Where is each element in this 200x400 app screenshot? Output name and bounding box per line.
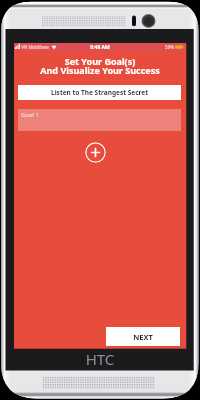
staticText: Set Your Goal(s) And Visualize Your Succ… xyxy=(14,55,186,77)
staticText: HTC xyxy=(0,349,200,369)
staticText: 9:48 AM xyxy=(14,44,186,51)
button[interactable]: NEXT xyxy=(106,327,180,346)
staticText: VN Mobifone xyxy=(21,44,49,50)
button[interactable]: Goal 1 xyxy=(18,109,181,131)
button[interactable]: Listen to The Strangest Secret xyxy=(18,85,181,100)
staticText: Listen to The Strangest Secret xyxy=(51,88,148,97)
button[interactable]: Add goal xyxy=(85,142,106,163)
staticText: Goal 1 xyxy=(21,111,39,119)
staticText: NEXT xyxy=(133,332,153,342)
staticText: 50% xyxy=(165,44,174,50)
